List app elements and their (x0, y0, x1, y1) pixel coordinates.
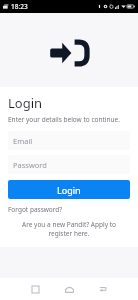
button[interactable]: Email (8, 131, 130, 150)
staticText: Forgot password? (8, 205, 63, 214)
staticText: Login (57, 184, 81, 196)
button[interactable]: Recent apps (18, 278, 52, 300)
staticText: Password (13, 160, 47, 170)
staticText: Are you a new Pandit? Apply to register … (12, 220, 126, 238)
button[interactable]: Login (8, 180, 130, 199)
staticText: Login (8, 94, 43, 112)
button[interactable]: Are you a new Pandit? Apply to register … (8, 220, 130, 238)
button[interactable]: Forgot password? (8, 205, 63, 214)
staticText: Enter your details below to continue. (8, 115, 120, 124)
button[interactable]: Back (86, 278, 120, 300)
button[interactable]: Home (52, 278, 86, 300)
staticText: 18:23 (11, 2, 28, 11)
button[interactable]: Password (8, 155, 130, 174)
staticText: Email (13, 136, 33, 146)
